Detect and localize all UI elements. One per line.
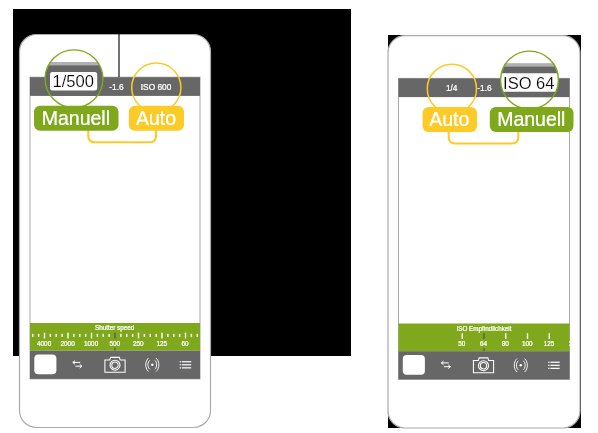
button[interactable]	[0, 0, 598, 433]
